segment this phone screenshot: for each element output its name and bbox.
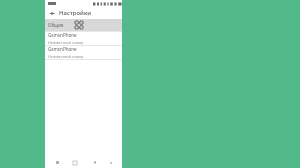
staticText: Неизвестный номер — [48, 40, 84, 45]
staticText: Настройки — [59, 9, 92, 17]
staticText: Общие — [48, 22, 64, 28]
button[interactable]: Back — [47, 8, 57, 18]
button[interactable]: Recents — [51, 157, 63, 168]
button[interactable]: Back — [88, 157, 100, 168]
staticText: GsmsnPhone — [48, 46, 77, 52]
staticText: GsmsnPhone — [48, 32, 77, 38]
button[interactable]: More — [106, 157, 116, 168]
button[interactable]: Общие — [45, 19, 122, 31]
button[interactable]: GsmsnPhone — [45, 46, 122, 59]
staticText: Неизвестный номер — [48, 54, 84, 59]
button[interactable]: GsmsnPhone — [45, 32, 122, 45]
button[interactable]: Home — [69, 157, 81, 168]
